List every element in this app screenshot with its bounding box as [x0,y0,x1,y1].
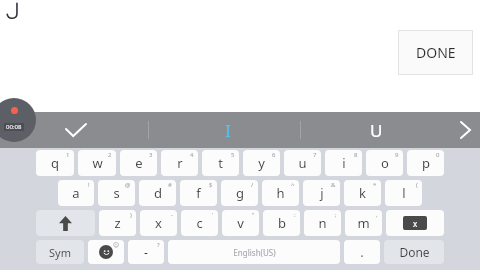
button[interactable]: b [263,210,300,236]
staticText: 6 [272,151,276,159]
staticText: z [114,214,121,232]
button[interactable]: e [120,150,157,176]
staticText: ☺ [113,241,120,248]
button[interactable]: n [304,210,341,236]
staticText: d [154,184,162,202]
staticText: 3 [149,151,153,159]
button[interactable]: Backspace [386,210,444,236]
button[interactable]: Accept [58,112,94,148]
button[interactable]: r [161,150,198,176]
button[interactable]: t [202,150,239,176]
button[interactable]: DONE [398,30,473,75]
staticText: w [92,154,103,172]
button[interactable]: I [206,112,250,148]
staticText: / [251,181,254,189]
button[interactable]: p [407,150,444,176]
button[interactable]: k [344,180,381,206]
staticText: l [402,184,406,202]
button[interactable]: q [36,150,74,176]
button[interactable]: o [366,150,403,176]
staticText: j [320,184,324,202]
button[interactable]: U [354,112,398,148]
button[interactable]: y [243,150,280,176]
button[interactable]: w [78,150,116,176]
button[interactable]: a [58,180,94,206]
button[interactable]: Space [168,240,340,264]
button[interactable]: s [98,180,135,206]
staticText: a [72,184,80,202]
staticText: 5 [231,151,235,159]
staticText: - [171,211,173,219]
staticText: Sym [49,245,71,260]
button[interactable]: d [139,180,176,206]
staticText: & [331,181,336,189]
staticText: 1 [66,151,70,159]
button[interactable]: h [262,180,299,206]
staticText: ^ [291,181,295,189]
staticText: DONE [416,43,456,62]
staticText: . [360,243,364,261]
staticText: 0 [436,151,440,159]
button[interactable]: Screen recorder [0,98,36,142]
staticText: o [381,154,389,172]
staticText: m [357,214,370,232]
staticText: i [342,154,346,172]
staticText: 4 [190,151,194,159]
button[interactable]: j [303,180,340,206]
staticText: I [225,119,231,142]
button[interactable]: Shift [36,210,95,236]
staticText: Done [399,244,430,260]
staticText: 00:08 [6,123,22,131]
staticText: 2 [108,151,112,159]
button[interactable]: Sym [36,240,84,264]
button[interactable]: More suggestions [450,112,480,148]
staticText: # [168,181,172,189]
staticText: ? [157,241,160,249]
staticText: English(US) [233,247,276,258]
button[interactable]: . [344,240,380,264]
staticText: u [298,154,307,172]
staticText: r [177,154,183,172]
button[interactable]: Emoji [88,240,124,264]
staticText: @ [125,181,131,189]
staticText: 8 [354,151,358,159]
staticText: s [113,184,120,202]
button[interactable]: m [345,210,382,236]
staticText: ) [130,211,132,219]
staticText: * [373,181,377,189]
staticText: U [370,119,383,142]
staticText: g [236,184,244,202]
button[interactable]: v [222,210,259,236]
staticText: ; [335,211,337,219]
staticText: : [294,211,296,219]
staticText: 9 [395,151,399,159]
staticText: ' [212,211,214,219]
button[interactable]: z [99,210,136,236]
staticText: t [218,154,223,172]
staticText: " [252,211,255,219]
staticText: h [276,184,285,202]
staticText: n [318,214,327,232]
button[interactable]: i [325,150,362,176]
button[interactable]: l [385,180,422,206]
staticText: x [413,218,418,229]
staticText: , [376,211,378,219]
button[interactable]: c [181,210,218,236]
staticText: b [278,214,286,232]
staticText: x [155,214,162,232]
staticText: ( [416,181,418,189]
staticText: v [237,214,244,232]
button[interactable]: x [140,210,177,236]
staticText: p [422,154,430,172]
staticText: y [258,154,265,172]
button[interactable]: Done [384,240,444,264]
staticText: 7 [313,151,317,159]
button[interactable]: f [180,180,217,206]
staticText: k [359,184,366,202]
staticText: c [196,214,203,232]
button[interactable]: - [128,240,164,264]
staticText: q [51,154,59,172]
button[interactable]: g [221,180,258,206]
staticText: - [144,244,148,260]
button[interactable]: u [284,150,321,176]
